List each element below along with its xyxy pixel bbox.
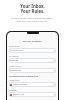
staticText: Set your custom rules and keep distracti…: [11, 17, 53, 23]
staticText: Friends only: [10, 69, 22, 72]
staticText: English (US): [13, 93, 25, 96]
staticText: Your Inbox. Your Rules.: [20, 3, 45, 14]
staticText: Data sharing: [9, 45, 20, 47]
staticText: Important only: [13, 83, 28, 86]
button[interactable]: Data sharing: [9, 45, 56, 55]
staticText: Disabled: [10, 59, 19, 62]
staticText: Communication Preferences: [9, 75, 38, 78]
staticText: Notifications: [9, 79, 20, 81]
staticText: Privacy Settings: [23, 39, 42, 42]
staticText: Analytics only: [10, 49, 23, 52]
staticText: Ad tracking: [9, 55, 19, 57]
button[interactable]: Ad tracking: [9, 55, 56, 65]
button[interactable]: Language: [9, 89, 56, 99]
staticText: Profile visibility: [9, 65, 22, 67]
staticText: Language: [9, 89, 18, 91]
button[interactable]: Notifications: [9, 79, 56, 89]
button[interactable]: Profile visibility: [9, 65, 56, 75]
